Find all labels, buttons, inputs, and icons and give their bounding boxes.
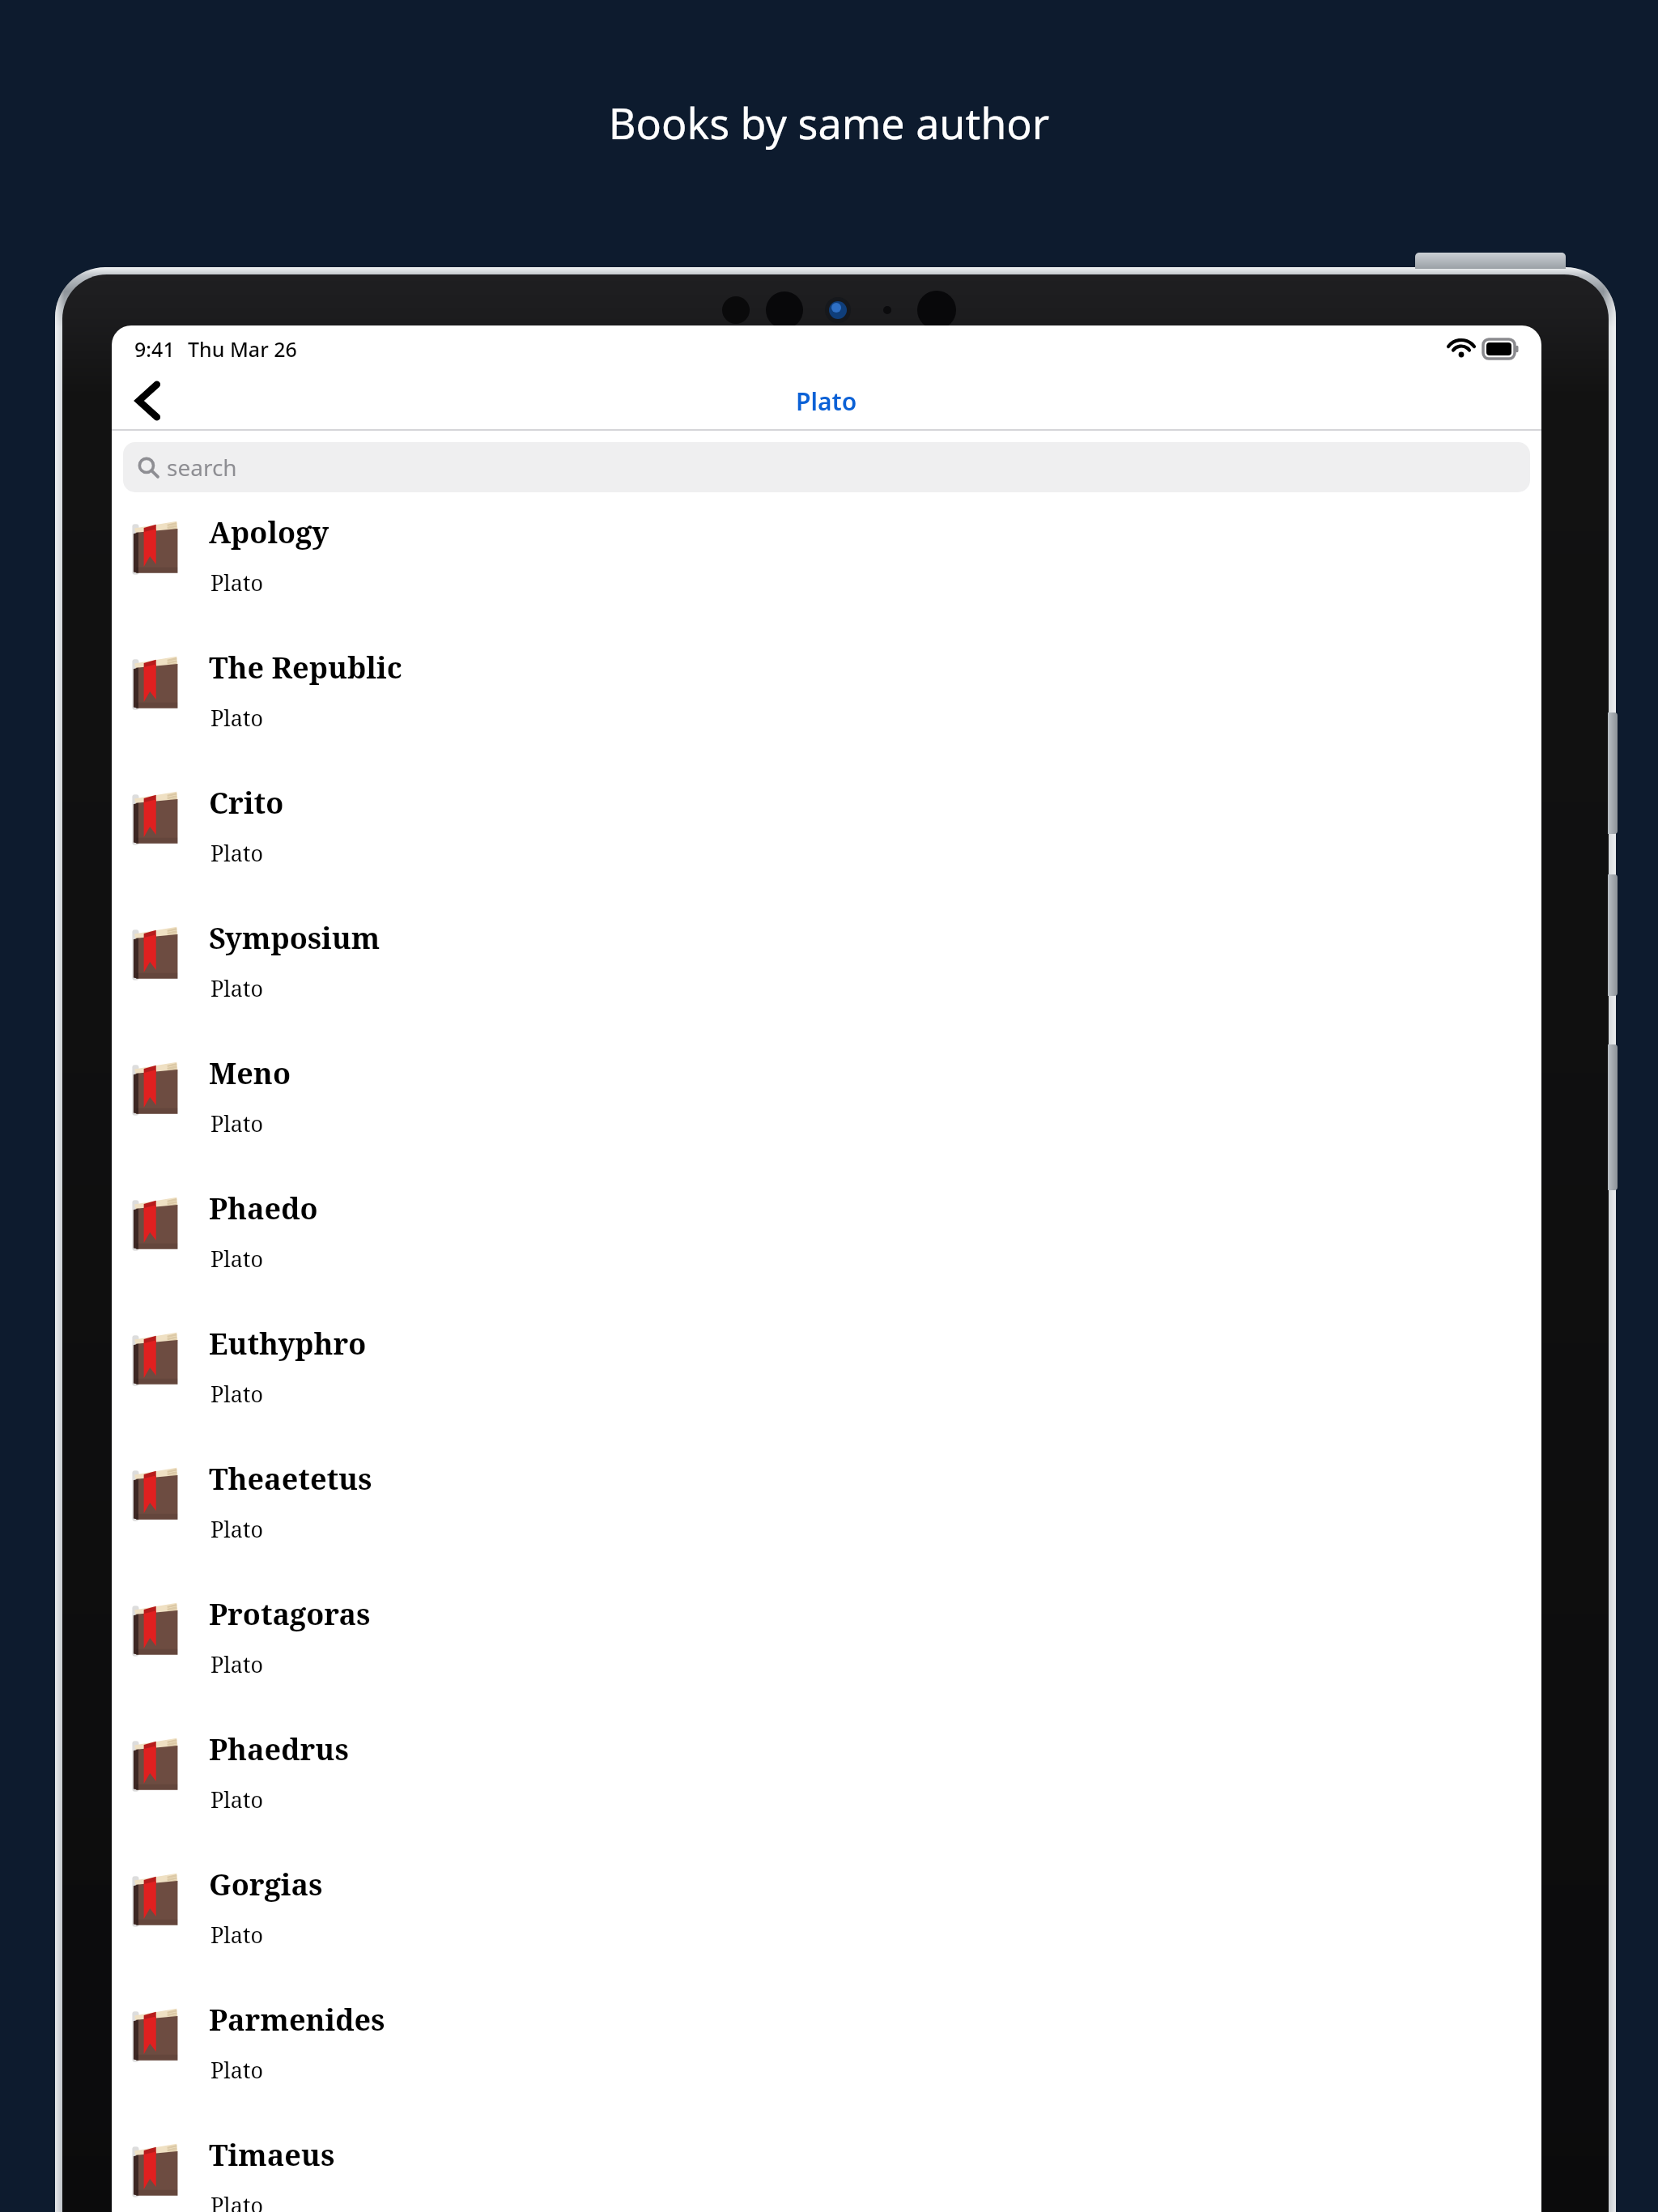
button[interactable]: Apology [112, 504, 1541, 639]
staticText: Plato [210, 2055, 263, 2085]
button[interactable]: Parmenides [112, 1991, 1541, 2126]
staticText: Protagoras [209, 1594, 371, 1634]
button[interactable]: Protagoras [112, 1585, 1541, 1721]
staticText: Gorgias [209, 1865, 323, 1904]
staticText: search [167, 452, 237, 483]
staticText: Euthyphro [209, 1324, 367, 1363]
staticText: The Republic [209, 648, 402, 687]
staticText: Plato [210, 838, 263, 868]
staticText: Plato [210, 1379, 263, 1409]
button[interactable]: Phaedrus [112, 1721, 1541, 1856]
button[interactable]: Gorgias [112, 1856, 1541, 1991]
staticText: Books by same author [0, 94, 1658, 151]
staticText: Plato [210, 1649, 263, 1679]
staticText: Plato [796, 385, 857, 418]
staticText: Crito [209, 783, 284, 823]
button[interactable]: Phaedo [112, 1180, 1541, 1315]
button[interactable]: Symposium [112, 909, 1541, 1044]
staticText: Timaeus [209, 2135, 335, 2175]
staticText: Apology [209, 513, 329, 552]
button[interactable]: search [123, 442, 1530, 492]
staticText: Plato [210, 568, 263, 598]
staticText: Plato [210, 1920, 263, 1950]
button[interactable]: Crito [112, 774, 1541, 909]
staticText: Phaedo [209, 1189, 318, 1228]
button[interactable]: Back [120, 372, 176, 429]
staticText: Thu Mar 26 [188, 335, 297, 363]
staticText: Plato [210, 1108, 263, 1138]
staticText: Plato [210, 1784, 263, 1814]
button[interactable]: Euthyphro [112, 1315, 1541, 1450]
staticText: Phaedrus [209, 1729, 349, 1769]
staticText: Symposium [209, 918, 380, 958]
staticText: 9:41 [134, 335, 175, 363]
staticText: Plato [210, 1514, 263, 1544]
staticText: Theaetetus [209, 1459, 372, 1499]
staticText: Plato [210, 703, 263, 733]
staticText: Plato [210, 1244, 263, 1274]
staticText: Parmenides [209, 2000, 385, 2040]
button[interactable]: Meno [112, 1044, 1541, 1180]
button[interactable]: Theaetetus [112, 1450, 1541, 1585]
button[interactable]: The Republic [112, 639, 1541, 774]
staticText: Meno [209, 1053, 291, 1093]
staticText: Plato [210, 2190, 263, 2212]
button[interactable]: Timaeus [112, 2126, 1541, 2212]
staticText: Plato [210, 973, 263, 1003]
